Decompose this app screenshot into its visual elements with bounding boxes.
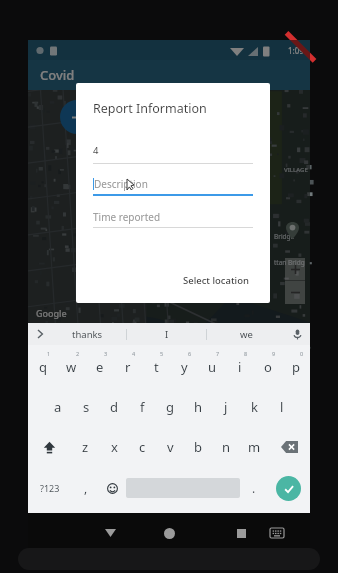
button[interactable]: Select location [179, 270, 253, 291]
staticText: w [66, 358, 77, 376]
staticText: e [96, 358, 104, 376]
staticText: 5 [160, 350, 164, 357]
button[interactable]: I [127, 323, 206, 345]
staticText: Time reported [93, 210, 161, 224]
button[interactable]: a [43, 387, 72, 427]
button[interactable]: p [282, 347, 310, 387]
staticText: q [39, 358, 47, 376]
staticText: Google [36, 307, 67, 319]
button[interactable]: o [254, 347, 282, 387]
button[interactable]: q [28, 347, 57, 387]
button[interactable]: f [128, 387, 156, 427]
staticText: I [165, 328, 169, 341]
button[interactable]: n [212, 427, 240, 467]
button[interactable]: w [57, 347, 86, 387]
button[interactable]: More suggestions [32, 326, 48, 342]
staticText: a [54, 398, 62, 416]
button[interactable]: Home [151, 515, 187, 551]
staticText: o [264, 358, 272, 376]
button[interactable]: Recent apps [224, 516, 258, 550]
staticText: d [110, 398, 118, 416]
button[interactable]: i [226, 347, 254, 387]
button[interactable]: Back [92, 513, 128, 553]
staticText: ?123 [40, 482, 60, 494]
button[interactable]: h [184, 387, 212, 427]
staticText: t [154, 358, 159, 376]
button[interactable]: v [156, 427, 184, 467]
staticText: h [194, 398, 203, 416]
button[interactable]: . [240, 467, 267, 509]
button[interactable]: r [114, 347, 142, 387]
button[interactable]: Time reported [93, 207, 253, 227]
staticText: 3 [104, 350, 108, 357]
button[interactable]: Emoji [99, 467, 126, 509]
button[interactable]: j [212, 387, 240, 427]
staticText: v [167, 438, 174, 456]
button[interactable]: Add report [60, 100, 94, 134]
button[interactable]: , [72, 467, 99, 509]
button[interactable]: g [156, 387, 184, 427]
staticText: m [248, 438, 261, 456]
button[interactable]: u [198, 347, 226, 387]
button[interactable]: 4 [93, 137, 253, 163]
button[interactable]: d [100, 387, 128, 427]
button[interactable]: z [71, 427, 100, 467]
staticText: Select location [183, 274, 249, 287]
button[interactable]: we [207, 323, 286, 345]
staticText: 9 [272, 350, 276, 357]
staticText: p [292, 358, 300, 376]
button[interactable]: Description [93, 174, 253, 194]
staticText: z [82, 438, 89, 456]
button[interactable]: Enter [276, 476, 301, 501]
button[interactable]: l [268, 387, 296, 427]
staticText: ttan Bridg [274, 258, 305, 267]
button[interactable]: thanks [48, 323, 126, 345]
staticText: r [125, 358, 131, 376]
button[interactable]: x [100, 427, 128, 467]
button[interactable]: Shift [28, 427, 71, 467]
staticText: j [224, 398, 228, 416]
staticText: 0 [300, 350, 304, 357]
staticText: f [140, 398, 145, 416]
button[interactable]: y [170, 347, 198, 387]
button[interactable]: Zoom out [285, 281, 305, 304]
button[interactable]: c [128, 427, 156, 467]
staticText: thanks [72, 328, 103, 341]
staticText: g [166, 398, 174, 416]
staticText: VILLAGE [284, 166, 308, 174]
staticText: we [240, 328, 253, 341]
staticText: 7 [216, 350, 220, 357]
staticText: y [181, 358, 188, 376]
staticText: 4 [93, 144, 99, 157]
button[interactable]: Backspace [268, 427, 310, 467]
button[interactable]: Zoom in [285, 258, 305, 280]
button[interactable]: t [142, 347, 170, 387]
button[interactable]: Voice input [289, 326, 305, 342]
staticText: 2 [76, 350, 80, 357]
button[interactable]: s [72, 387, 100, 427]
staticText: k [251, 398, 258, 416]
staticText: x [111, 438, 118, 456]
staticText: b [194, 438, 202, 456]
button[interactable]: m [240, 427, 268, 467]
staticText: u [208, 358, 217, 376]
staticText: 1:09 [288, 45, 304, 56]
staticText: , [84, 480, 88, 496]
staticText: l [280, 398, 284, 416]
staticText: Transit Museum [204, 350, 246, 357]
staticText: c [139, 438, 146, 456]
button[interactable]: ?123 [28, 467, 72, 509]
button[interactable]: k [240, 387, 268, 427]
staticText: 6 [188, 350, 192, 357]
staticText: i [238, 358, 242, 376]
staticText: 1 [47, 350, 51, 357]
button[interactable]: e [86, 347, 114, 387]
staticText: 4 [132, 350, 136, 357]
button[interactable]: b [184, 427, 212, 467]
staticText: s [83, 398, 90, 416]
staticText: 8 [244, 350, 248, 357]
button[interactable]: Switch keyboard [262, 518, 292, 548]
